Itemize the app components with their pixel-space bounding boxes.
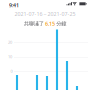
staticText: 共聊溱了 (24, 20, 44, 27)
staticText: 10 (8, 54, 12, 59)
staticText: 2021-07-16 ~ 2021-07-25 (14, 10, 75, 18)
staticText: 0 (11, 69, 13, 74)
staticText: 20 (8, 40, 12, 45)
staticText: 9:41 (9, 2, 19, 9)
staticText: 6.15 (45, 20, 55, 27)
staticText: 分鐘 (56, 20, 66, 27)
